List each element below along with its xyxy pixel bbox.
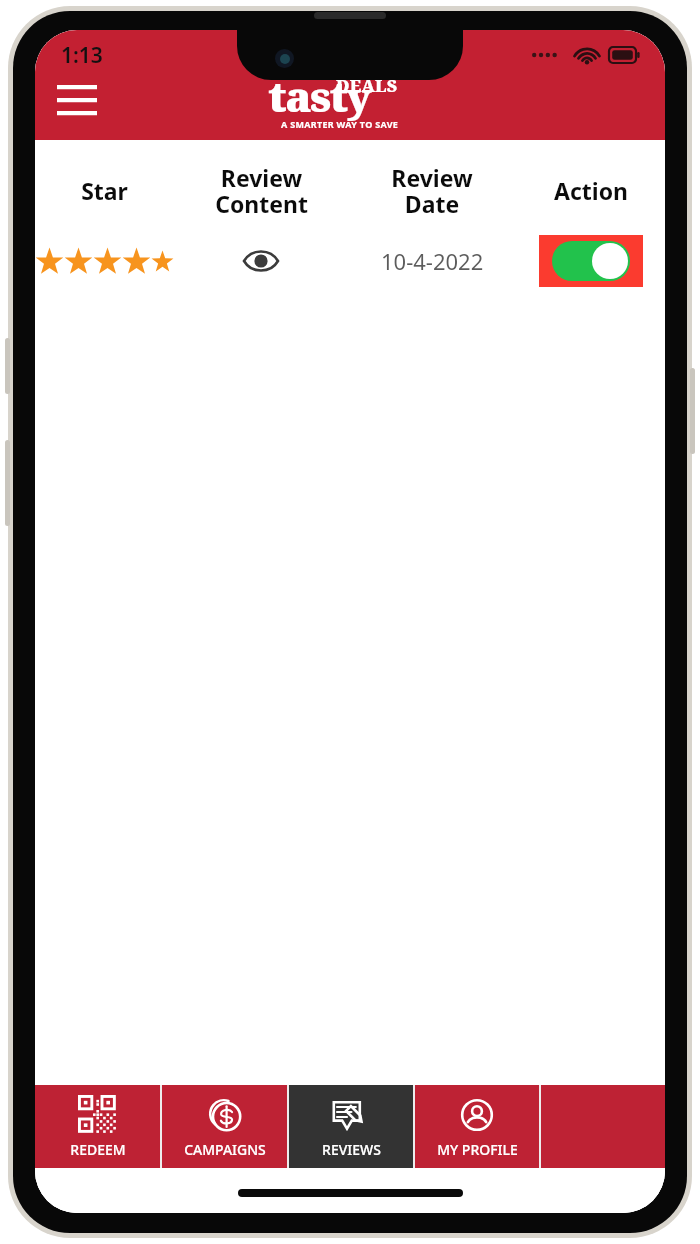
- button[interactable]: Tasty Deals home: [268, 67, 432, 136]
- button[interactable]: REDEEM: [35, 1085, 160, 1168]
- staticText: DEALS: [336, 74, 398, 97]
- staticText: 1:13: [61, 41, 103, 70]
- button[interactable]: Toggle review visibility: [539, 235, 643, 287]
- button[interactable]: CAMPAIGNS: [162, 1085, 287, 1168]
- staticText: CAMPAIGNS: [184, 1140, 266, 1159]
- staticText: 10-4-2022: [381, 246, 484, 276]
- staticText: REDEEM: [70, 1140, 126, 1159]
- staticText: tasty: [268, 67, 370, 124]
- staticText: Action: [554, 175, 628, 206]
- button[interactable]: MY PROFILE: [415, 1085, 539, 1168]
- button[interactable]: View review content: [238, 238, 284, 284]
- staticText: Review Date: [391, 162, 473, 218]
- button[interactable]: Open menu: [49, 70, 105, 126]
- staticText: MY PROFILE: [437, 1140, 518, 1159]
- staticText: A SMARTER WAY TO SAVE: [281, 118, 399, 130]
- staticText: Review Content: [215, 162, 308, 218]
- staticText: REVIEWS: [322, 1140, 381, 1159]
- button[interactable]: REVIEWS: [289, 1085, 413, 1168]
- staticText: Star: [81, 175, 128, 206]
